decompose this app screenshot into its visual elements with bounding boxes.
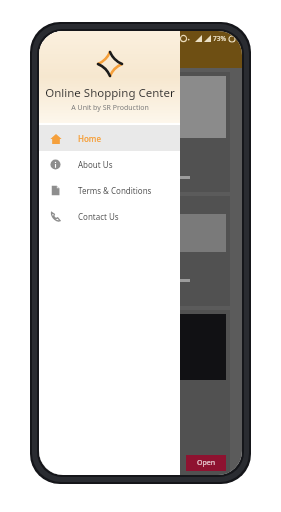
staticText: Contact Us bbox=[78, 211, 119, 222]
staticText: Online Shopping Center bbox=[45, 85, 175, 101]
button[interactable]: Home bbox=[39, 125, 180, 151]
button[interactable]: Terms & Conditions bbox=[39, 177, 180, 203]
button[interactable]: Contact Us bbox=[39, 203, 180, 229]
other: Battery bbox=[228, 35, 236, 43]
staticText: Open bbox=[197, 458, 216, 468]
staticText: 12:32 bbox=[45, 34, 63, 44]
staticText: A Unit by SR Production bbox=[71, 103, 149, 113]
staticText: Child Dress bbox=[45, 157, 93, 169]
staticText: 73% bbox=[213, 34, 226, 43]
staticText: Home bbox=[78, 133, 102, 144]
button[interactable]: About Us bbox=[39, 151, 180, 177]
staticText: About Us bbox=[78, 159, 113, 170]
other: Alarm bbox=[180, 34, 194, 43]
button[interactable]: Open bbox=[186, 455, 226, 471]
staticText: Terms & Conditions bbox=[78, 185, 152, 196]
